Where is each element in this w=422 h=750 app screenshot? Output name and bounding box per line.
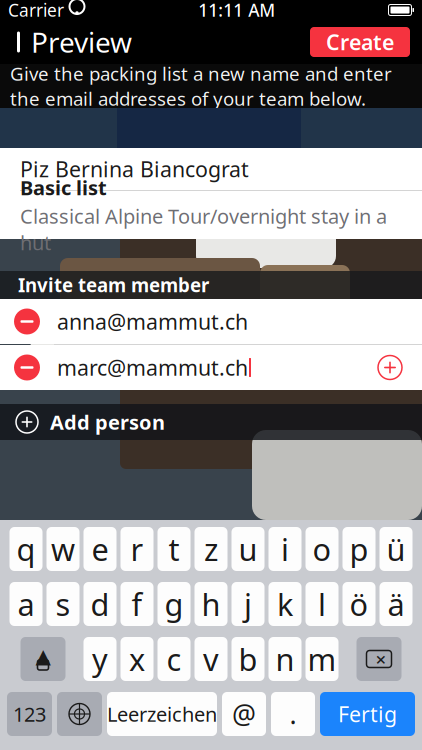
button[interactable]: b bbox=[231, 637, 264, 681]
button[interactable]: k bbox=[268, 582, 301, 626]
button[interactable]: v bbox=[194, 637, 227, 681]
button[interactable]: z bbox=[194, 527, 227, 571]
staticText: u bbox=[238, 529, 257, 569]
staticText: f bbox=[131, 584, 142, 624]
staticText: p bbox=[349, 529, 368, 569]
button[interactable]: Fertig bbox=[320, 692, 415, 736]
staticText: 11:11 AM bbox=[198, 0, 275, 21]
button[interactable]: Add person bbox=[0, 404, 422, 440]
button[interactable]: l bbox=[305, 582, 338, 626]
staticText: l bbox=[318, 584, 326, 624]
staticText: r bbox=[130, 529, 143, 569]
staticText: anna@mammut.ch bbox=[57, 307, 248, 336]
button[interactable]: d bbox=[83, 582, 116, 626]
staticText: y bbox=[92, 639, 108, 679]
staticText: Piz Bernina Biancograt bbox=[20, 155, 249, 183]
button[interactable]: p bbox=[342, 527, 375, 571]
button[interactable]: c bbox=[157, 637, 190, 681]
staticText: Preview bbox=[31, 23, 132, 61]
button[interactable]: j bbox=[231, 582, 264, 626]
staticText: Fertig bbox=[338, 700, 397, 728]
staticText: t bbox=[168, 529, 179, 569]
button[interactable]: m bbox=[305, 637, 338, 681]
staticText: c bbox=[166, 639, 181, 679]
staticText: Carrier bbox=[8, 0, 64, 21]
button[interactable]: 123 bbox=[7, 692, 52, 736]
button[interactable]: ä bbox=[379, 582, 412, 626]
button[interactable]: @ bbox=[222, 692, 266, 736]
staticText: s bbox=[55, 584, 70, 624]
staticText: ä bbox=[387, 584, 404, 624]
button[interactable]: Remove marc@mammut.ch bbox=[0, 345, 54, 390]
button[interactable]: g bbox=[157, 582, 190, 626]
staticText: Create bbox=[326, 28, 394, 56]
staticText: ▲ bbox=[35, 645, 50, 667]
button[interactable]: Delete bbox=[356, 637, 401, 681]
staticText: marc@mammut.ch bbox=[57, 353, 248, 382]
staticText: d bbox=[90, 584, 109, 624]
button[interactable]: y bbox=[83, 637, 116, 681]
staticText: . bbox=[289, 696, 296, 732]
button[interactable]: Leerzeichen bbox=[107, 692, 217, 736]
button[interactable]: x bbox=[120, 637, 153, 681]
button[interactable]: ü bbox=[379, 527, 412, 571]
button[interactable]: . bbox=[271, 692, 315, 736]
button[interactable]: a bbox=[9, 582, 42, 626]
button[interactable]: i bbox=[268, 527, 301, 571]
staticText: 123 bbox=[13, 701, 46, 727]
staticText: o bbox=[312, 529, 331, 569]
staticText: ü bbox=[386, 529, 405, 569]
button[interactable]: e bbox=[83, 527, 116, 571]
staticText: z bbox=[204, 529, 218, 569]
staticText: Classical Alpine Tour/overnight stay in … bbox=[20, 203, 387, 256]
staticText: i bbox=[281, 529, 289, 569]
staticText: j bbox=[244, 584, 252, 624]
button[interactable]: Add email address bbox=[378, 345, 422, 390]
button[interactable]: s bbox=[46, 582, 79, 626]
button[interactable]: t bbox=[157, 527, 190, 571]
button[interactable]: Shift bbox=[20, 637, 65, 681]
staticText: Give the packing list a new name and ent… bbox=[10, 61, 392, 111]
button[interactable]: Preview bbox=[0, 20, 142, 64]
staticText: Basic list bbox=[20, 174, 107, 201]
staticText: Invite team member bbox=[18, 273, 209, 297]
button[interactable]: Next keyboard bbox=[57, 692, 102, 736]
staticText: h bbox=[201, 584, 220, 624]
button[interactable]: w bbox=[46, 527, 79, 571]
button[interactable]: ö bbox=[342, 582, 375, 626]
button[interactable]: Create bbox=[310, 27, 410, 57]
staticText: x bbox=[129, 639, 145, 679]
button[interactable]: f bbox=[120, 582, 153, 626]
staticText: Leerzeichen bbox=[107, 701, 217, 727]
staticText: q bbox=[16, 529, 35, 569]
staticText: k bbox=[277, 584, 293, 624]
button[interactable]: Basic list bbox=[0, 191, 422, 239]
staticText: e bbox=[91, 529, 108, 569]
button[interactable]: r bbox=[120, 527, 153, 571]
staticText: Add person bbox=[50, 409, 165, 435]
button[interactable]: q bbox=[9, 527, 42, 571]
staticText: ö bbox=[349, 584, 368, 624]
button[interactable]: o bbox=[305, 527, 338, 571]
button[interactable]: Remove anna@mammut.ch bbox=[0, 299, 54, 344]
staticText: m bbox=[307, 639, 336, 679]
staticText: @ bbox=[232, 696, 256, 732]
button[interactable]: n bbox=[268, 637, 301, 681]
button[interactable]: h bbox=[194, 582, 227, 626]
staticText: g bbox=[164, 584, 183, 624]
staticText: a bbox=[17, 584, 34, 624]
staticText: v bbox=[203, 639, 219, 679]
staticText: n bbox=[275, 639, 294, 679]
staticText: × bbox=[375, 647, 386, 671]
button[interactable]: u bbox=[231, 527, 264, 571]
staticText: w bbox=[51, 529, 75, 569]
staticText: b bbox=[238, 639, 257, 679]
